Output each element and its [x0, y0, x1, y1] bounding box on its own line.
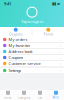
button[interactable]: Category	[16, 91, 32, 99]
staticText: Coupons	[8, 55, 23, 60]
staticText: ▮▮ ▰	[52, 1, 60, 6]
staticText: Category	[18, 96, 30, 99]
staticText: My favorites	[8, 43, 30, 48]
staticText: My orders	[8, 37, 27, 42]
staticText: Coupons	[9, 33, 22, 36]
button[interactable]: My favorites	[0, 43, 64, 48]
button[interactable]: Customer service	[0, 61, 64, 66]
button[interactable]: Points	[32, 28, 64, 36]
staticText: ›	[60, 49, 61, 54]
button[interactable]: Home	[0, 91, 16, 99]
button[interactable]: Coupons	[0, 55, 64, 60]
staticText: 9:41	[4, 1, 11, 6]
staticText: Tap to sign in	[21, 19, 43, 24]
staticText: Cart	[37, 96, 42, 99]
staticText: ›	[60, 61, 61, 66]
staticText: Address book	[8, 49, 32, 54]
staticText: Points	[44, 33, 53, 36]
staticText: Settings	[8, 68, 21, 73]
staticText: ›	[60, 37, 61, 42]
staticText: Customer service	[8, 61, 40, 66]
button[interactable]: Cart	[32, 91, 48, 99]
staticText: ›	[60, 43, 61, 48]
button[interactable]: Settings	[0, 68, 64, 73]
staticText: ›	[60, 68, 61, 73]
button[interactable]: My orders	[0, 37, 64, 42]
button[interactable]: Mine	[48, 91, 64, 99]
button[interactable]: Address book	[0, 49, 64, 54]
staticText: ›	[60, 55, 61, 60]
button[interactable]: Coupons	[0, 28, 31, 36]
staticText: Home	[4, 96, 12, 99]
staticText: Mine	[52, 96, 59, 99]
